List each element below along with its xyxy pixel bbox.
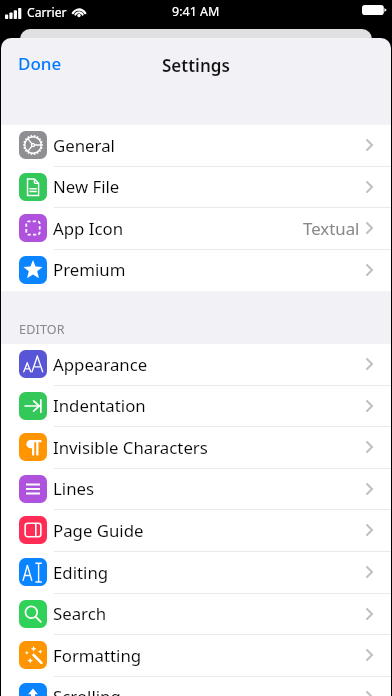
staticText: Textual (303, 217, 360, 240)
staticText: General (53, 134, 115, 157)
staticText: App Icon (53, 217, 124, 240)
staticText: Formatting (53, 644, 142, 667)
staticText: Done (18, 52, 62, 75)
button[interactable]: Indentation (1, 386, 391, 427)
button[interactable]: Editing (1, 552, 391, 594)
button[interactable]: Search (1, 594, 391, 635)
staticText: 9:41 AM (172, 3, 220, 20)
staticText: Scrolling (53, 685, 121, 696)
staticText: New File (53, 175, 120, 198)
staticText: Lines (53, 477, 95, 500)
staticText: Appearance (53, 353, 148, 376)
staticText: Page Guide (53, 519, 144, 542)
staticText: Settings (162, 54, 230, 77)
staticText: Search (53, 602, 107, 625)
staticText: Indentation (53, 394, 146, 417)
button[interactable]: New File (1, 167, 391, 208)
button[interactable]: Appearance (1, 344, 391, 386)
button[interactable]: Lines (1, 469, 391, 510)
staticText: EDITOR (19, 321, 65, 338)
staticText: Premium (53, 258, 126, 281)
button[interactable]: Done (1, 46, 79, 81)
button[interactable]: Page Guide (1, 510, 391, 552)
staticText: Invisible Characters (53, 436, 208, 459)
button[interactable]: Premium (1, 250, 391, 291)
staticText: Editing (53, 561, 109, 584)
button[interactable]: Scrolling (1, 677, 391, 696)
staticText: Carrier (27, 4, 67, 21)
button[interactable]: General (1, 125, 391, 167)
button[interactable]: App Icon (1, 208, 391, 250)
button[interactable]: Invisible Characters (1, 427, 391, 469)
button[interactable]: Formatting (1, 635, 391, 677)
